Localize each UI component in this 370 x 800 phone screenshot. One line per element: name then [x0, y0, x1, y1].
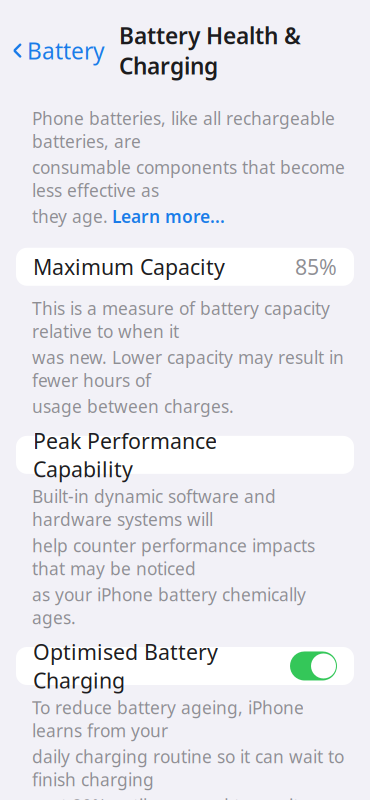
button[interactable]: Peak Performance Capability — [16, 436, 354, 474]
button[interactable]: Optimised Battery Charging — [16, 647, 354, 685]
staticText: consumable components that become less e… — [32, 156, 345, 202]
button[interactable]: Learn more... — [112, 205, 225, 228]
button[interactable]: Maximum Capacity — [16, 248, 354, 286]
staticText: Built-in dynamic software and hardware s… — [32, 485, 276, 531]
button[interactable]: Battery — [12, 31, 105, 70]
staticText: past 80% until you need to use it. — [32, 794, 304, 800]
staticText: This is a measure of battery capacity re… — [32, 297, 330, 343]
staticText: daily charging routine so it can wait to… — [32, 745, 344, 791]
staticText: Learn more... — [112, 205, 225, 228]
staticText: Battery — [27, 35, 105, 66]
staticText: Maximum Capacity — [33, 253, 225, 281]
staticText: they age. — [32, 205, 108, 228]
staticText: Peak Performance Capability — [33, 426, 217, 483]
staticText: was new. Lower capacity may result in fe… — [32, 346, 344, 392]
staticText: help counter performance impacts that ma… — [32, 534, 315, 580]
staticText: Battery Health & Charging — [119, 20, 301, 81]
staticText: usage between charges. — [32, 395, 234, 418]
staticText: Optimised Battery Charging — [33, 638, 218, 694]
staticText: as your iPhone battery chemically ages. — [32, 583, 306, 629]
staticText: To reduce battery ageing, iPhone learns … — [32, 696, 304, 742]
staticText: 85% — [295, 253, 337, 281]
staticText: Phone batteries, like all rechargeable b… — [32, 107, 335, 153]
